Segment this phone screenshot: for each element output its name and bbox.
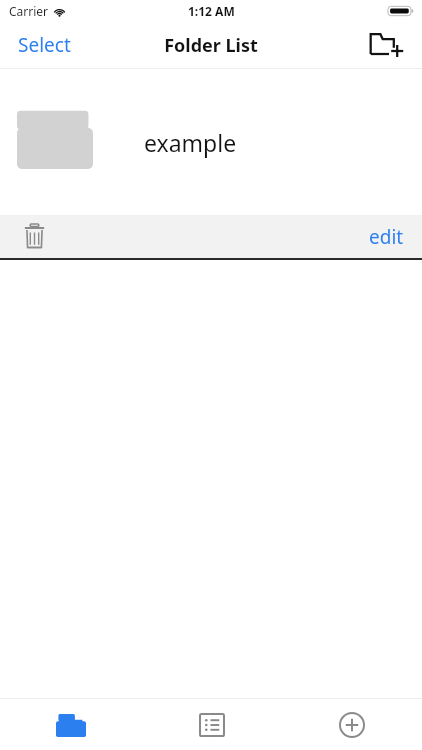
button[interactable]: example bbox=[0, 69, 422, 215]
staticText: Carrier bbox=[9, 3, 49, 19]
button[interactable]: edit bbox=[351, 218, 422, 256]
staticText: example bbox=[144, 127, 237, 158]
staticText: Select bbox=[18, 32, 71, 58]
staticText: Folder List bbox=[164, 33, 258, 58]
button[interactable]: Folders bbox=[0, 699, 141, 750]
button[interactable]: New Folder bbox=[364, 24, 410, 66]
button[interactable]: Select bbox=[0, 24, 89, 66]
button[interactable]: List bbox=[141, 699, 282, 750]
button[interactable]: Delete bbox=[20, 220, 49, 253]
button[interactable]: Add bbox=[282, 699, 422, 750]
staticText: 1:12 AM bbox=[188, 3, 235, 19]
staticText: edit bbox=[369, 224, 404, 250]
